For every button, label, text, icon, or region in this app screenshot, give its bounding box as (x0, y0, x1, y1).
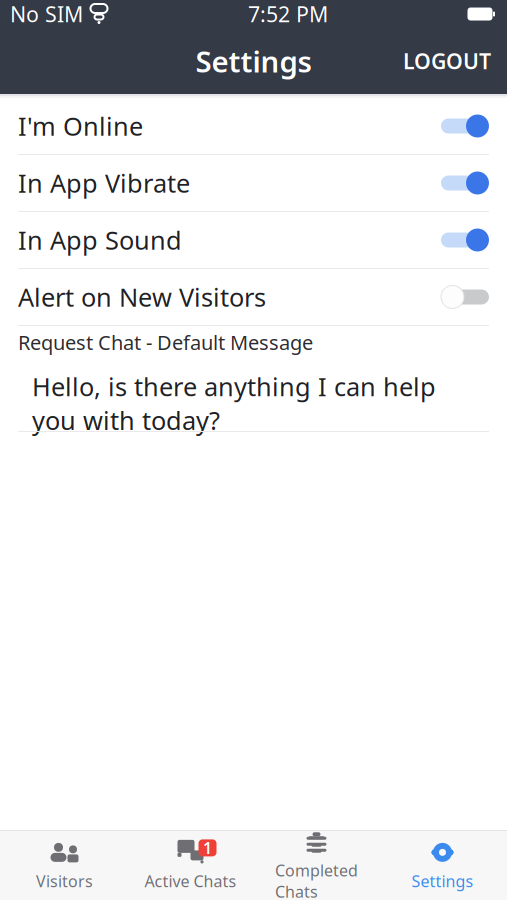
button[interactable]: Completed Chats (253, 834, 379, 896)
button[interactable]: LOGOUT (393, 39, 501, 83)
staticText: LOGOUT (403, 47, 491, 75)
staticText: Settings (411, 870, 473, 892)
button[interactable]: 1 (127, 834, 253, 896)
staticText: Request Chat - Default Message (18, 329, 313, 356)
staticText: Settings (195, 41, 311, 80)
staticText: No SIM (10, 0, 83, 28)
button[interactable]: Visitors (1, 834, 127, 896)
staticText: Completed Chats (275, 860, 358, 900)
staticText: 7:52 PM (248, 0, 328, 28)
button[interactable]: Request Chat - Default Message (0, 326, 507, 431)
button[interactable]: In App Vibrate (0, 155, 507, 211)
button[interactable]: Settings (379, 834, 505, 896)
staticText: Hello, is there anything I can help you … (32, 370, 436, 437)
staticText: In App Sound (18, 223, 182, 257)
staticText: Alert on New Visitors (18, 280, 266, 314)
staticText: 1 (203, 837, 212, 858)
staticText: Visitors (36, 870, 93, 892)
staticText: In App Vibrate (18, 166, 190, 200)
staticText: I'm Online (18, 109, 143, 143)
button[interactable]: In App Sound (0, 212, 507, 268)
button[interactable]: Alert on New Visitors (0, 269, 507, 325)
staticText: Active Chats (144, 870, 236, 892)
button[interactable]: I'm Online (0, 98, 507, 154)
